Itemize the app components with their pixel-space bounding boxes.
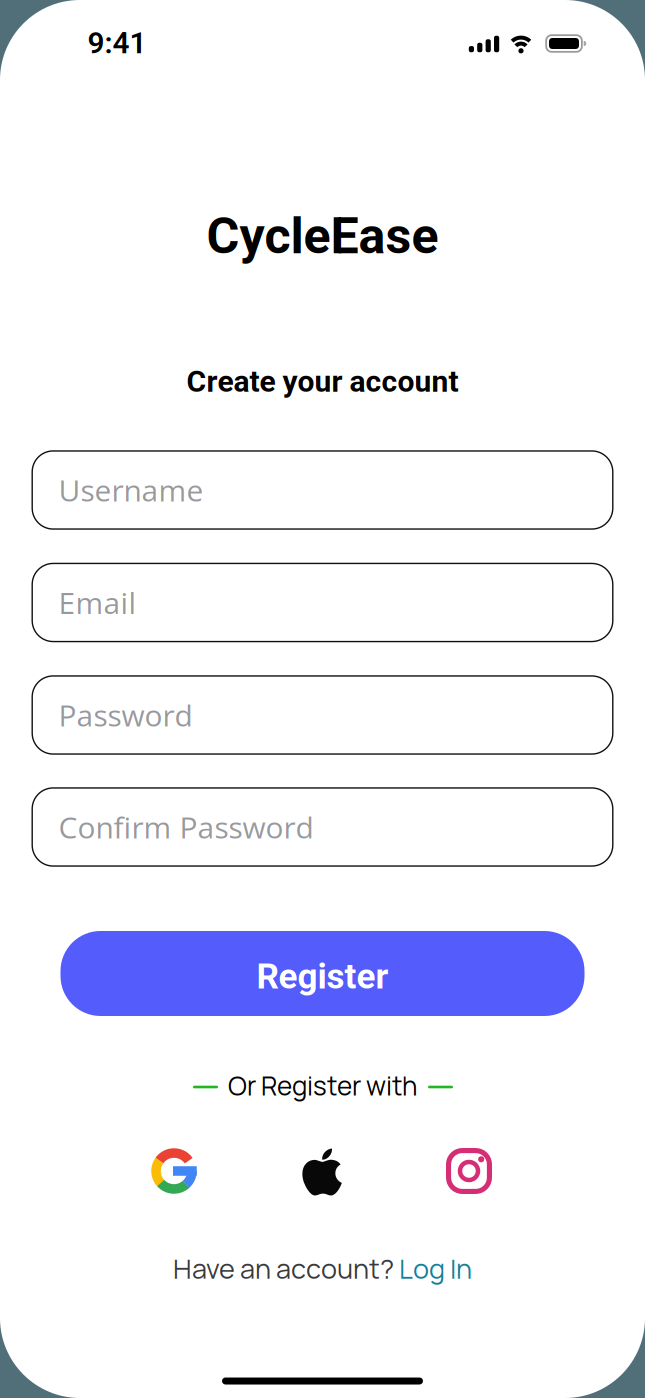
staticText: 9:41 bbox=[87, 26, 146, 60]
staticText: CycleEase bbox=[206, 207, 438, 265]
button[interactable]: Confirm Password bbox=[31, 787, 613, 867]
button[interactable]: Register with Instagram bbox=[439, 1141, 499, 1201]
staticText: Or Register with bbox=[228, 1068, 417, 1103]
staticText: Username bbox=[58, 470, 203, 510]
staticText: Have an account? bbox=[173, 1250, 394, 1287]
button[interactable]: Register with Apple bbox=[292, 1142, 352, 1202]
button[interactable]: Register with Google bbox=[144, 1141, 204, 1201]
staticText: Confirm Password bbox=[58, 807, 313, 847]
staticText: Log In bbox=[399, 1250, 472, 1287]
button[interactable]: Email bbox=[31, 563, 613, 642]
staticText: Create your account bbox=[186, 364, 458, 399]
button[interactable]: Log In bbox=[399, 1250, 472, 1287]
button[interactable]: Register bbox=[60, 931, 584, 1016]
staticText: Register bbox=[256, 956, 388, 997]
button[interactable]: Password bbox=[31, 675, 613, 755]
staticText: Password bbox=[58, 695, 192, 735]
button[interactable]: Username bbox=[31, 450, 613, 530]
staticText: Email bbox=[58, 582, 136, 623]
